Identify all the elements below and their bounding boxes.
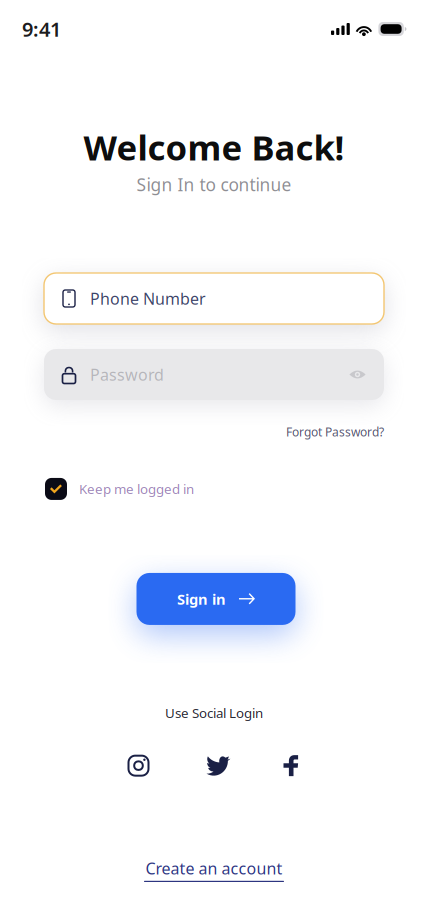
- staticText: Welcome Back!: [83, 124, 344, 170]
- button[interactable]: Twitter: [206, 755, 230, 777]
- button[interactable]: Instagram: [127, 755, 149, 777]
- staticText: Use Social Login: [165, 704, 263, 722]
- button[interactable]: Sign in: [136, 573, 295, 625]
- staticText: Sign In to continue: [136, 173, 291, 196]
- button[interactable]: Forgot Password?: [286, 424, 384, 440]
- staticText: Keep me logged in: [79, 480, 194, 498]
- staticText: Sign in: [177, 589, 226, 609]
- button[interactable]: Create an account: [144, 858, 284, 882]
- staticText: Phone Number: [90, 288, 206, 309]
- staticText: Password: [90, 364, 164, 385]
- staticText: Forgot Password?: [286, 424, 384, 440]
- staticText: Create an account: [145, 858, 282, 879]
- button[interactable]: Keep me logged in: [0, 478, 428, 500]
- button[interactable]: Facebook: [283, 755, 298, 776]
- staticText: 9:41: [22, 16, 61, 42]
